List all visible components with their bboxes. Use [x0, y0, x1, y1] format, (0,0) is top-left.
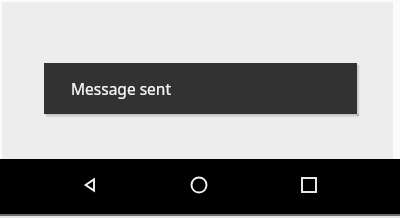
button[interactable]: Home [175, 161, 223, 209]
button[interactable]: Recent apps [285, 161, 333, 209]
staticText: Message sent [71, 78, 171, 99]
button[interactable]: Back [66, 161, 114, 209]
button[interactable]: Message sent [44, 63, 357, 114]
